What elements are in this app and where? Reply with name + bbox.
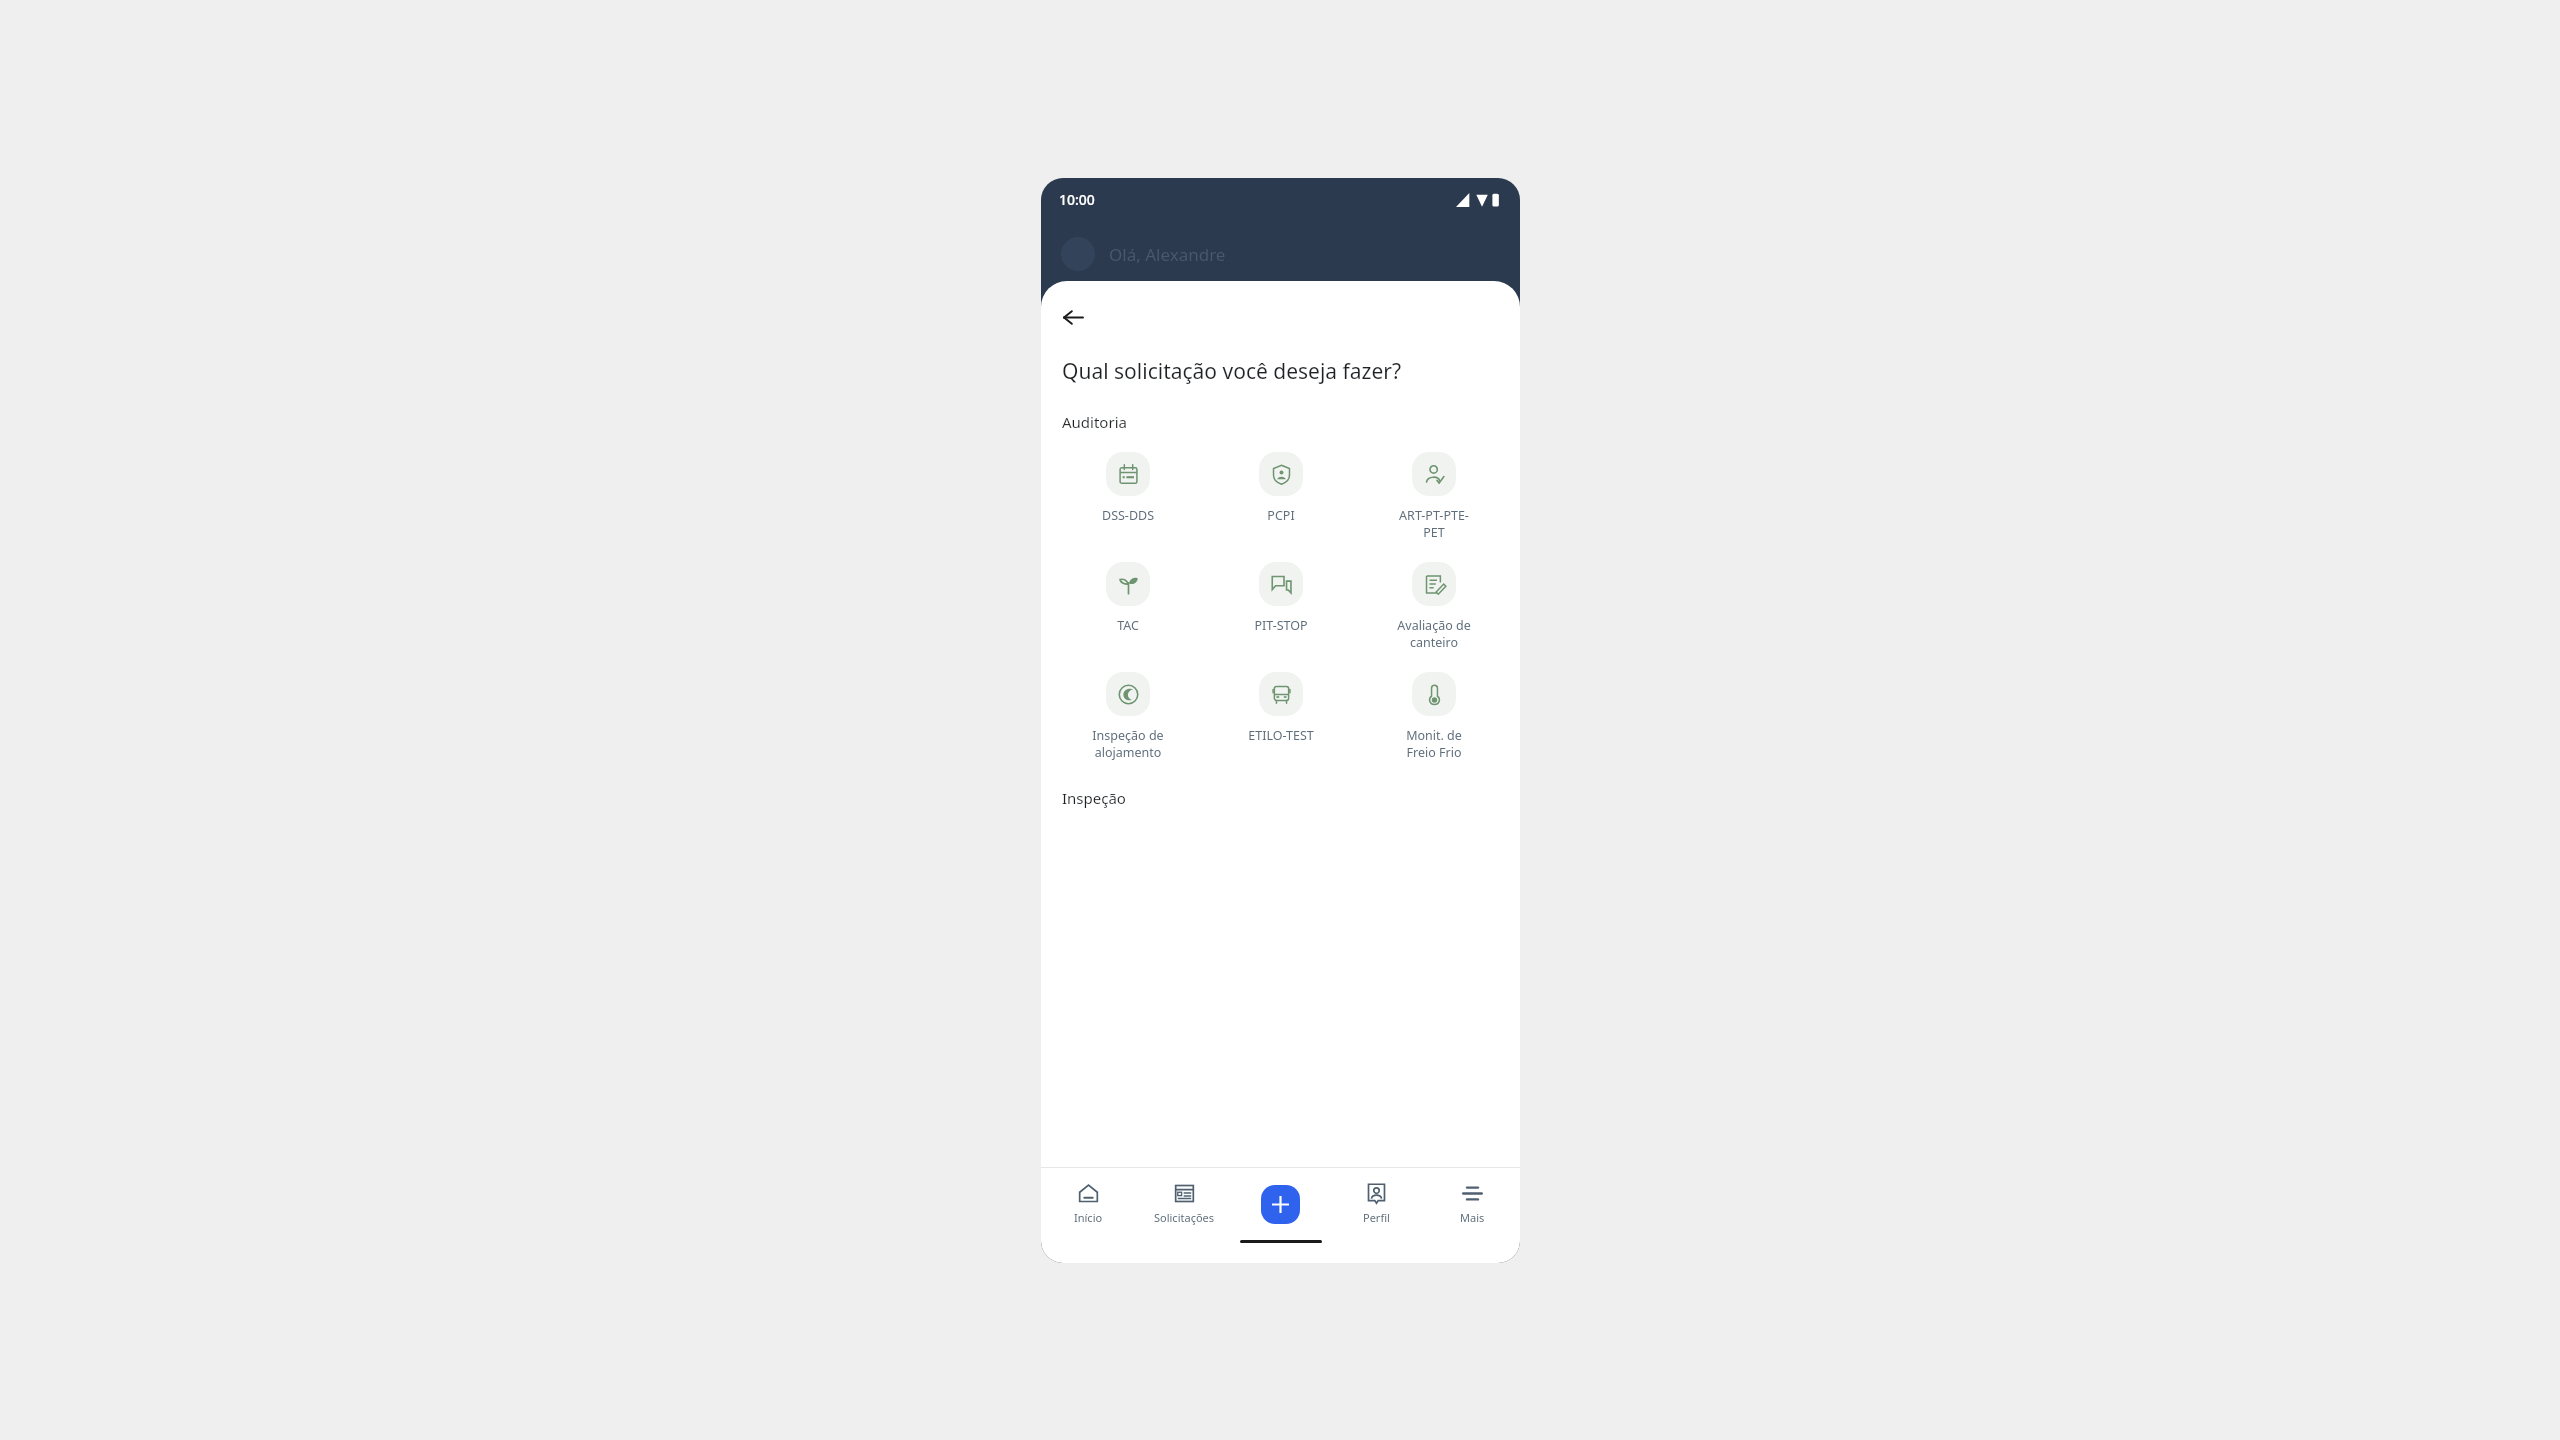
button[interactable]: DSS-DDS — [1051, 450, 1204, 526]
staticText: Inspeção — [1062, 788, 1126, 808]
staticText: Mais — [1460, 1210, 1485, 1225]
staticText: Perfil — [1363, 1210, 1390, 1225]
button[interactable]: Início — [1041, 1168, 1136, 1240]
staticText: Monit. de Freio Frio — [1406, 727, 1462, 760]
button[interactable]: PIT-STOP — [1204, 560, 1357, 636]
staticText: DSS-DDS — [1102, 507, 1154, 524]
staticText: Qual solicitação você deseja fazer? — [1062, 357, 1402, 386]
button[interactable]: Perfil — [1328, 1168, 1424, 1240]
staticText: 10:00 — [1059, 190, 1095, 209]
button[interactable]: Inspeção de alojamento — [1051, 670, 1204, 762]
staticText: Avaliação de canteiro — [1397, 617, 1471, 650]
staticText: PCPI — [1267, 507, 1295, 524]
staticText: PIT-STOP — [1254, 617, 1308, 634]
button[interactable]: Nova solicitação — [1261, 1185, 1300, 1224]
staticText: TAC — [1117, 617, 1139, 634]
button[interactable]: Voltar — [1051, 295, 1095, 339]
staticText: Olá, Alexandre — [1109, 243, 1226, 266]
button[interactable]: ETILO-TEST — [1204, 670, 1357, 746]
button[interactable]: PCPI — [1204, 450, 1357, 526]
staticText: Início — [1074, 1210, 1103, 1225]
button[interactable]: ART-PT-PTE- PET — [1357, 450, 1510, 542]
staticText: ART-PT-PTE- PET — [1399, 507, 1469, 540]
staticText: Auditoria — [1062, 412, 1127, 432]
staticText: Solicitações — [1154, 1210, 1215, 1225]
button[interactable]: Avaliação de canteiro — [1357, 560, 1510, 652]
button[interactable]: Monit. de Freio Frio — [1357, 670, 1510, 762]
staticText: ETILO-TEST — [1248, 727, 1314, 744]
button[interactable]: Mais — [1424, 1168, 1520, 1240]
button[interactable]: Solicitações — [1136, 1168, 1232, 1240]
button[interactable]: TAC — [1051, 560, 1204, 636]
staticText: Inspeção de alojamento — [1092, 727, 1164, 760]
